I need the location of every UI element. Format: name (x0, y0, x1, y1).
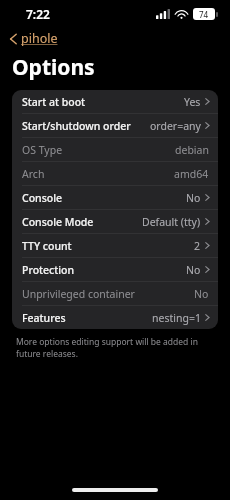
staticText: pihole (21, 30, 58, 47)
staticText: Features (22, 311, 66, 325)
button[interactable]: Console Mode (12, 210, 218, 233)
staticText: future releases. (16, 348, 78, 360)
staticText: nesting=1 (152, 311, 201, 325)
button[interactable]: Console (12, 186, 218, 209)
staticText: Console Mode (22, 215, 94, 229)
staticText: Options (12, 53, 95, 82)
staticText: Yes (184, 95, 201, 109)
staticText: More options editing support will be add… (16, 336, 198, 348)
button[interactable]: Features (12, 306, 218, 329)
staticText: 74 (199, 9, 209, 20)
staticText: Console (22, 191, 63, 205)
button[interactable]: Start/shutdown order (12, 114, 218, 137)
staticText: Start at boot (22, 95, 86, 109)
button[interactable]: pihole (7, 28, 60, 49)
staticText: amd64 (174, 167, 209, 181)
button[interactable]: TTY count (12, 234, 218, 257)
button[interactable]: Start at boot (12, 90, 218, 113)
staticText: Default (tty) (142, 215, 201, 229)
staticText: order=any (150, 119, 201, 133)
staticText: 7:22 (26, 6, 50, 22)
staticText: Protection (22, 263, 75, 277)
staticText: debian (175, 143, 209, 157)
staticText: Arch (22, 167, 45, 181)
staticText: OS Type (22, 143, 63, 157)
button[interactable]: Protection (12, 258, 218, 281)
staticText: Unprivileged container (22, 287, 135, 301)
staticText: Start/shutdown order (22, 119, 131, 133)
staticText: No (186, 263, 201, 277)
staticText: 2 (194, 239, 201, 253)
staticText: No (194, 287, 209, 301)
staticText: TTY count (22, 239, 72, 253)
staticText: No (186, 191, 201, 205)
